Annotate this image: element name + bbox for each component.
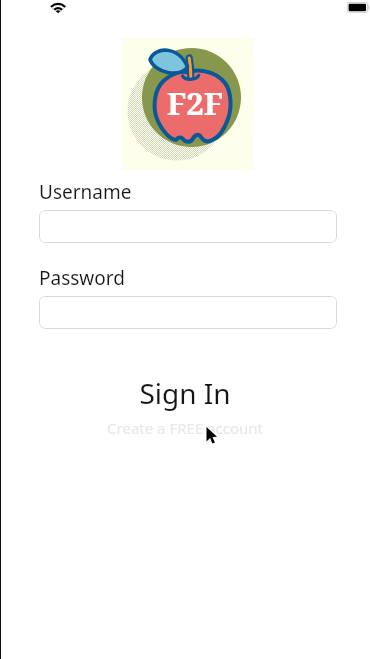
other: Battery <box>346 0 370 14</box>
button[interactable]: Sign In <box>0 374 370 412</box>
staticText: F2F <box>167 82 224 124</box>
button[interactable]: Create a FREE account <box>0 417 370 439</box>
staticText: Create a FREE account <box>107 418 263 438</box>
staticText: Username <box>39 179 132 205</box>
staticText: Sign In <box>139 374 231 412</box>
staticText: Password <box>39 265 125 291</box>
button[interactable]: Text field <box>39 210 337 243</box>
button[interactable]: Text field <box>39 296 337 329</box>
other: Wifi <box>50 0 66 14</box>
